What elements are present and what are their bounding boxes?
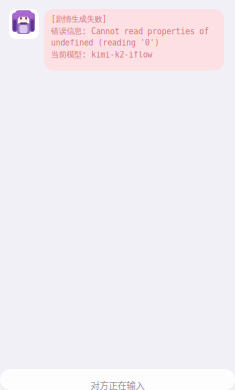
staticText: 当前模型: kimi-k2-iflow	[51, 49, 153, 60]
staticText: 错误信息: Cannot read properties of	[51, 26, 209, 36]
staticText: [剧情生成失败]	[51, 14, 107, 24]
staticText: undefined (reading '0')	[51, 38, 159, 47]
staticText: 对方正在输入	[90, 378, 144, 390]
